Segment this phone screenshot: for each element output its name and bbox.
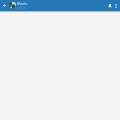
staticText: Maria bbox=[17, 1, 28, 6]
button[interactable]: Contact info bbox=[106, 2, 113, 9]
button[interactable]: Back bbox=[1, 2, 7, 8]
staticText: online bbox=[17, 6, 26, 10]
button[interactable]: Contact photo bbox=[9, 2, 16, 9]
button[interactable]: More options bbox=[113, 3, 119, 9]
